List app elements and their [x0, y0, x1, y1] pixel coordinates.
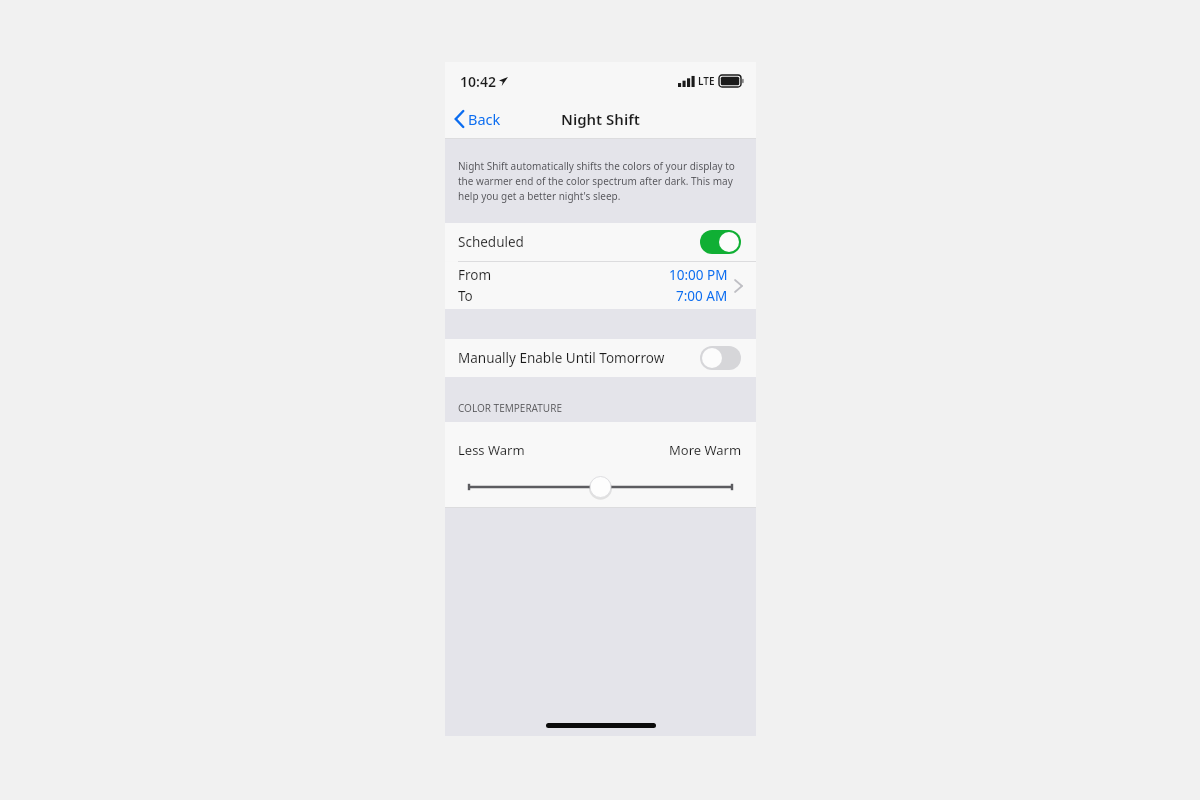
staticText: Night Shift automatically shifts the col…: [458, 159, 744, 203]
button[interactable]: Back: [445, 105, 509, 133]
staticText: 10:00 PM: [669, 266, 728, 284]
staticText: Back: [468, 109, 501, 129]
staticText: Night Shift: [561, 109, 640, 129]
button[interactable]: From: [445, 262, 756, 309]
staticText: Less Warm: [458, 441, 525, 459]
button[interactable]: Manually Enable Until Tomorrow: [445, 339, 756, 377]
staticText: To: [458, 287, 473, 305]
staticText: 7:00 AM: [676, 287, 728, 305]
staticText: 10:42: [460, 72, 496, 91]
button[interactable]: Toggle on: [700, 230, 741, 254]
staticText: LTE: [698, 74, 715, 88]
staticText: More Warm: [669, 441, 742, 459]
button[interactable]: Toggle off: [700, 346, 741, 370]
staticText: From: [458, 266, 492, 284]
staticText: Manually Enable Until Tomorrow: [458, 349, 665, 367]
button[interactable]: Scheduled: [445, 223, 756, 261]
staticText: COLOR TEMPERATURE: [458, 401, 562, 415]
staticText: Scheduled: [458, 233, 524, 251]
button[interactable]: [468, 474, 733, 500]
